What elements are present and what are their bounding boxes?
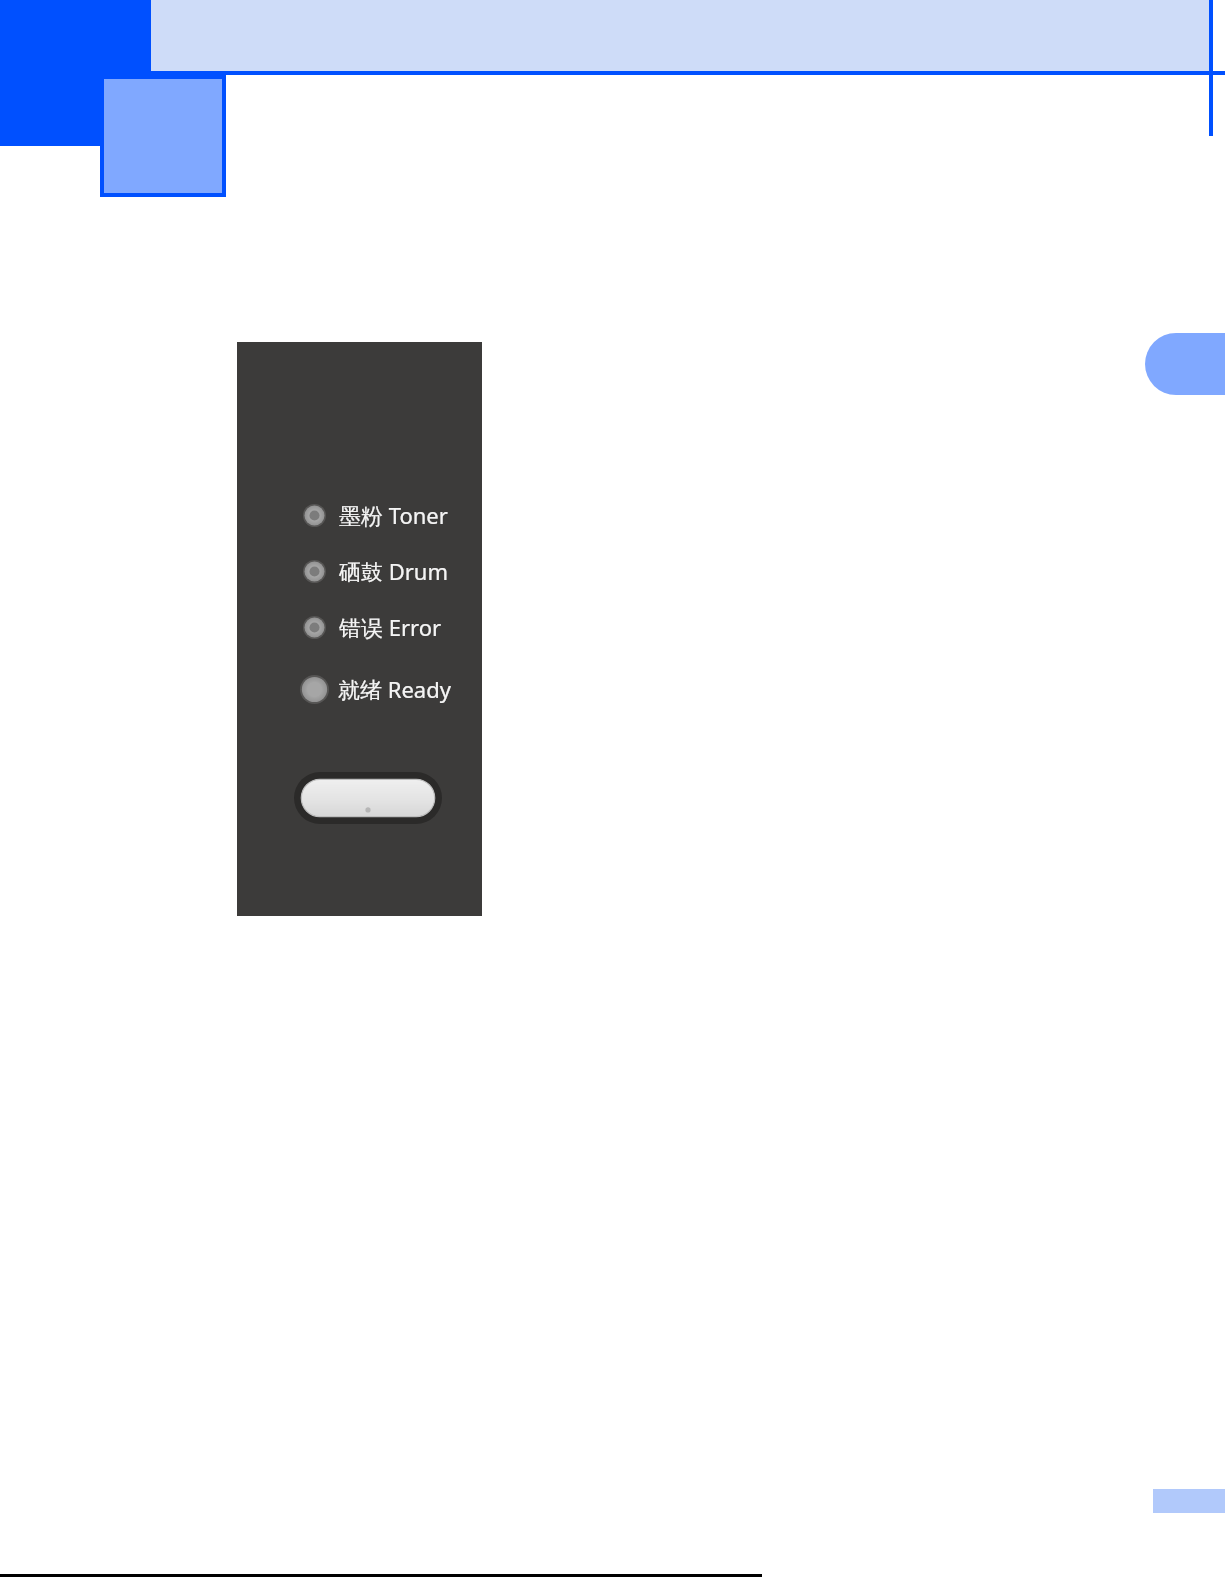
button[interactable]: 硒鼓 Drum [303,554,449,588]
button[interactable]: 墨粉 Toner [303,498,448,532]
staticText: 墨粉 Toner [339,500,448,530]
button[interactable]: Go [294,772,442,824]
button[interactable]: 就绪 Ready [300,672,451,706]
button[interactable]: 错误 Error [303,610,442,644]
staticText: 硒鼓 Drum [339,556,449,586]
staticText: 就绪 Ready [338,674,451,704]
staticText: 错误 Error [339,612,442,642]
